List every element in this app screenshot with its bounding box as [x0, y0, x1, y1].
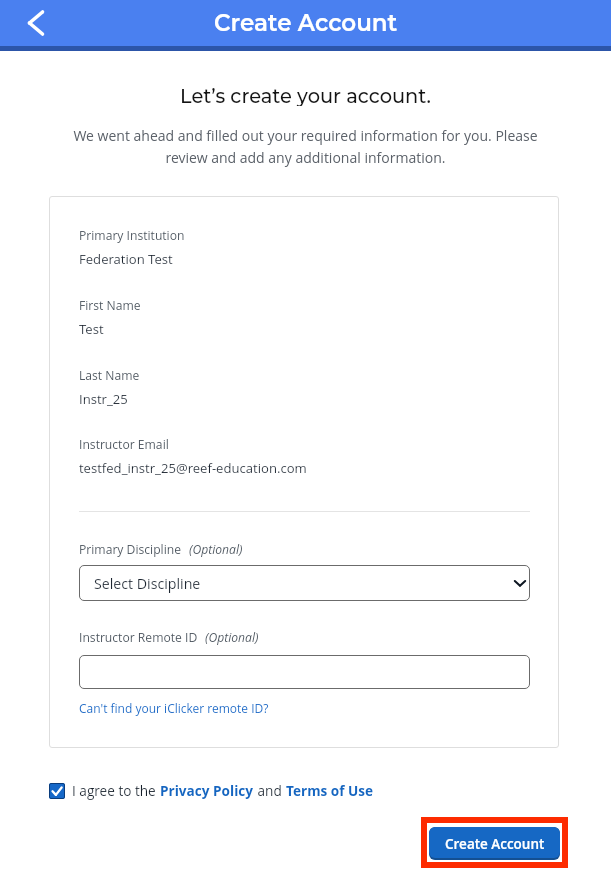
button[interactable]	[49, 783, 65, 799]
staticText: (Optional)	[205, 629, 259, 646]
button[interactable]: Privacy Policy	[160, 781, 254, 800]
staticText: Create Account	[445, 835, 545, 853]
button[interactable]: Create Account	[429, 827, 560, 860]
staticText: Let’s create your account.	[180, 84, 431, 106]
staticText: Test	[79, 320, 104, 338]
staticText: Federation Test	[79, 250, 173, 268]
staticText: and	[254, 781, 286, 800]
staticText: Instr_25	[79, 390, 128, 408]
button[interactable]: Terms of Use	[286, 781, 374, 800]
staticText: We went ahead and filled out your requir…	[66, 126, 545, 167]
staticText: I agree to the	[72, 781, 160, 800]
button[interactable]: Select Discipline	[79, 565, 530, 601]
button[interactable]: Can't find your iClicker remote ID?	[79, 700, 269, 716]
staticText: Last Name	[79, 367, 140, 384]
staticText: Primary Institution	[79, 227, 185, 244]
staticText: (Optional)	[189, 541, 243, 558]
staticText: Create Account	[214, 9, 398, 37]
staticText: Instructor Remote ID	[79, 629, 198, 646]
staticText: First Name	[79, 297, 141, 314]
staticText: Instructor Email	[79, 436, 169, 453]
staticText: Primary Discipline	[79, 541, 182, 558]
button[interactable]: Back	[13, 0, 59, 46]
staticText: testfed_instr_25@reef-education.com	[79, 459, 307, 477]
staticText: Select Discipline	[94, 574, 201, 593]
button[interactable]	[79, 655, 530, 689]
